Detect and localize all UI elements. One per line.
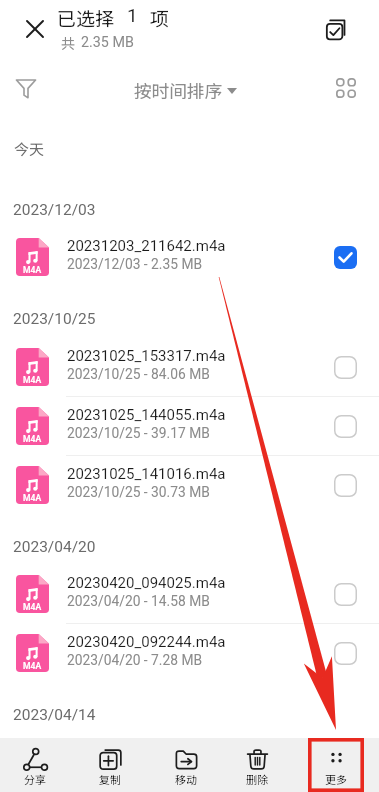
button[interactable]: 分享 [7,738,63,792]
staticText: M4A [23,661,42,671]
button[interactable]: Select item [323,404,367,448]
button[interactable]: Select all [318,11,355,48]
staticText: 1 [127,4,138,26]
staticText: 共 [61,33,75,53]
button[interactable]: M4A [0,228,379,287]
staticText: 已选择 [57,4,115,32]
staticText: 移动 [175,771,197,787]
staticText: 2023/12/03 - 2.35 MB [67,256,203,272]
staticText: 20231025_144055.m4a [67,406,226,424]
staticText: 2023/04/20 - 14.58 MB [67,593,210,609]
button[interactable]: Select item [323,235,367,279]
staticText: M4A [23,493,42,503]
staticText: 更多 [325,771,347,787]
staticText: M4A [23,375,42,385]
staticText: 按时间排序 [134,78,222,103]
button[interactable]: 复制 [82,738,138,792]
staticText: 20231203_211642.m4a [67,237,226,255]
button[interactable]: Filter [6,68,46,108]
staticText: 2023/04/14 [13,706,96,724]
button[interactable]: Close [16,10,53,47]
button[interactable]: M4A [0,456,379,515]
staticText: 2023/04/20 [13,538,96,556]
button[interactable]: Grid view [328,70,364,106]
staticText: M4A [23,265,42,275]
button[interactable]: Select item [323,572,367,616]
button[interactable]: Select item [323,345,367,389]
staticText: 20231025_153317.m4a [67,347,226,365]
button[interactable]: 移动 [158,738,214,792]
staticText: 复制 [99,771,121,787]
staticText: 2023/12/03 [13,201,96,219]
staticText: 删除 [246,771,268,787]
staticText: 分享 [24,771,46,787]
button[interactable]: Select item [323,463,367,507]
button[interactable]: 更多 [308,738,364,792]
staticText: 2023/10/25 - 39.17 MB [67,425,210,441]
staticText: 20231025_141016.m4a [67,465,226,483]
staticText: M4A [23,434,42,444]
staticText: 2.35 MB [81,34,134,51]
button[interactable]: M4A [0,624,379,683]
staticText: 20230420_094025.m4a [67,574,226,592]
staticText: 项 [150,4,170,32]
button[interactable]: 删除 [229,738,285,792]
button[interactable]: M4A [0,338,379,397]
staticText: 20230420_092244.m4a [67,633,226,651]
staticText: 2023/10/25 - 84.06 MB [67,366,210,382]
button[interactable]: Select item [323,631,367,675]
button[interactable]: 按时间排序 [126,73,245,108]
button[interactable]: M4A [0,565,379,624]
staticText: M4A [23,602,42,612]
staticText: 2023/10/25 [13,310,96,328]
staticText: 今天 [14,138,45,160]
staticText: 2023/10/25 - 30.73 MB [67,484,210,500]
button[interactable]: M4A [0,397,379,456]
staticText: 2023/04/20 - 7.28 MB [67,652,203,668]
